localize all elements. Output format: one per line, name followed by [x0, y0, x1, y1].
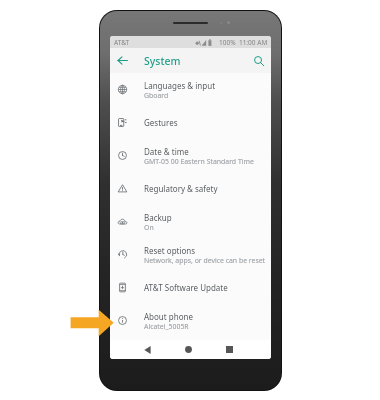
staticText: Alcatel_5005R [144, 322, 189, 331]
staticText: Backup [144, 212, 172, 223]
staticText: Gboard [144, 91, 169, 100]
staticText: Date & time [144, 146, 189, 157]
button[interactable]: Regulatory & safety [110, 172, 271, 205]
button[interactable]: AT&T Software Update [110, 271, 271, 304]
staticText: About phone [144, 311, 193, 322]
button[interactable]: About phone [110, 304, 271, 337]
button[interactable]: Gestures [110, 106, 271, 139]
staticText: Languages & input [144, 80, 216, 91]
button[interactable]: Back [139, 341, 156, 358]
staticText: GMT-05 00 Eastern Standard Time [144, 157, 254, 166]
button[interactable]: Recents [221, 341, 238, 358]
button[interactable]: Date & time [110, 139, 271, 172]
staticText: 100% 11:00 AM [219, 38, 268, 47]
button[interactable]: Backup [110, 205, 271, 238]
staticText: AT&T Software Update [144, 282, 228, 293]
button[interactable]: Reset options [110, 238, 271, 271]
staticText: Regulatory & safety [144, 183, 218, 194]
button[interactable]: Home [180, 341, 197, 358]
staticText: On [144, 223, 154, 232]
staticText: AT&T [114, 38, 130, 47]
staticText: System [144, 54, 181, 68]
button[interactable]: Search [253, 55, 265, 67]
button[interactable]: Languages & input [110, 73, 271, 106]
button[interactable]: Back [116, 54, 129, 67]
staticText: Gestures [144, 117, 178, 128]
staticText: Network, apps, or device can be reset [144, 256, 266, 265]
staticText: Reset options [144, 245, 196, 256]
